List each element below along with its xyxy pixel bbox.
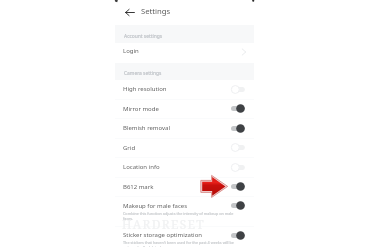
button[interactable]: On	[230, 103, 246, 114]
button[interactable]	[115, 44, 254, 62]
staticText: Makeup for male faces	[123, 202, 188, 210]
staticText: automatically deleted.	[123, 245, 162, 247]
button[interactable]	[115, 197, 254, 215]
button[interactable]: Back	[124, 5, 135, 19]
staticText: HARDRESET	[122, 216, 205, 232]
staticText: High resolution	[123, 85, 167, 93]
staticText: Mirror mode	[123, 105, 159, 113]
button[interactable]	[115, 119, 254, 137]
button[interactable]: On	[230, 123, 246, 134]
staticText: Login	[123, 47, 139, 55]
button[interactable]	[115, 80, 254, 98]
staticText: The stickers that haven't been used for …	[123, 240, 234, 245]
staticText: Grid	[123, 144, 136, 152]
staticText: Location info	[123, 163, 160, 171]
button[interactable]	[115, 178, 254, 196]
staticText: Blemish removal	[123, 124, 170, 132]
staticText: Account settings	[124, 33, 163, 40]
staticText: faces.	[123, 216, 134, 221]
staticText: Sticker storage optimization	[123, 231, 202, 239]
button[interactable]: Off	[230, 142, 246, 153]
button[interactable]: On	[230, 230, 246, 241]
button[interactable]: On	[230, 200, 246, 211]
staticText: Combine this function adjusts the intens…	[123, 211, 234, 216]
button[interactable]: On	[230, 181, 246, 192]
button[interactable]	[115, 100, 254, 118]
button[interactable]: Off	[230, 84, 246, 95]
button[interactable]	[115, 139, 254, 157]
staticText: B612 mark	[123, 183, 154, 191]
button[interactable]	[115, 227, 254, 245]
staticText: Camera settings	[124, 70, 162, 77]
staticText: Settings	[141, 6, 171, 16]
button[interactable]	[115, 158, 254, 176]
button[interactable]: Off	[230, 162, 246, 173]
